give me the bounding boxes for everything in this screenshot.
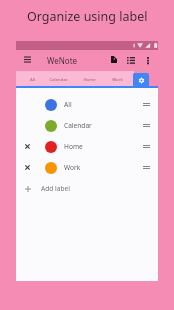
button[interactable]: Calendar [45,71,71,86]
button[interactable]: New note [106,52,121,67]
button[interactable]: More options [140,52,155,67]
button[interactable]: Work [104,71,130,86]
other: Reorder [136,157,156,178]
staticText: WeNote [47,55,78,66]
staticText: Work [112,76,123,82]
other: Reorder [136,94,156,115]
button[interactable]: Settings [133,73,149,87]
button[interactable]: All [16,94,158,115]
other: Reorder [136,115,156,136]
button[interactable]: Open navigation menu [20,52,35,67]
staticText: Home [64,142,83,151]
staticText: Calendar [64,121,92,130]
button[interactable]: Home [76,71,102,86]
staticText: Add label [41,184,70,193]
button[interactable]: Home [16,136,158,157]
staticText: All [30,76,35,82]
button[interactable]: All [19,71,45,86]
staticText: Home [83,76,96,82]
button[interactable]: Switch layout [123,52,138,67]
button[interactable]: Add label [16,178,158,199]
staticText: Work [64,163,81,172]
staticText: Calendar [49,76,68,82]
staticText: All [64,100,72,109]
button[interactable]: Work [16,157,158,178]
other: Reorder [136,136,156,157]
button[interactable]: Calendar [16,115,158,136]
staticText: Organize using label [27,8,148,25]
